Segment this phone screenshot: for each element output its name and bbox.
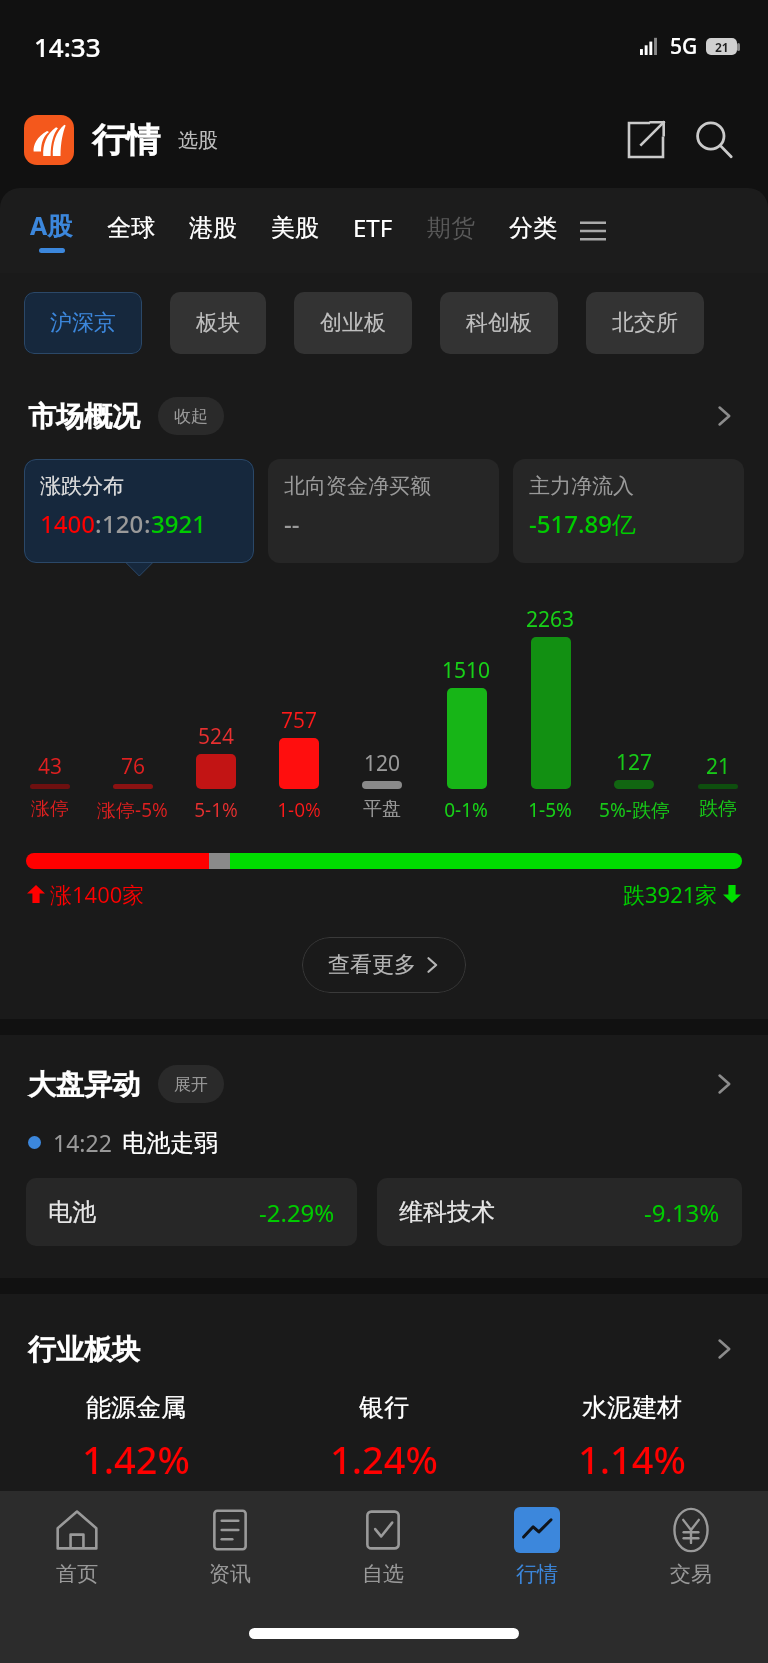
button[interactable]: ETF <box>353 211 393 250</box>
staticText: 美股 <box>271 213 319 243</box>
staticText: 76 <box>121 752 146 781</box>
button[interactable]: 北交所 <box>586 292 704 354</box>
button[interactable]: 水泥建材 <box>508 1392 756 1485</box>
staticText: 1510 <box>442 656 491 685</box>
staticText: 120 <box>102 507 144 540</box>
staticText: 分类 <box>509 213 557 243</box>
staticText: 涨停 <box>31 797 69 821</box>
staticText: 43 <box>38 752 63 781</box>
staticText: 全球 <box>107 213 155 243</box>
button[interactable]: 沪深京 <box>24 292 142 354</box>
staticText: 展开 <box>174 1074 208 1095</box>
button[interactable]: 展开 <box>158 1065 224 1103</box>
button[interactable]: 收起 <box>158 397 224 435</box>
staticText: 127 <box>616 748 653 777</box>
button[interactable]: 大盘异动 <box>0 1041 768 1127</box>
button[interactable]: 市场概况 <box>0 373 768 459</box>
staticText: -- <box>284 507 300 540</box>
staticText: 电池走弱 <box>122 1128 218 1158</box>
staticText: 行情 <box>516 1561 558 1587</box>
staticText: 市场概况 <box>28 399 140 434</box>
button[interactable]: More tabs <box>571 209 615 253</box>
staticText: 北向资金净买额 <box>284 473 431 499</box>
staticText: 北交所 <box>612 309 678 337</box>
button[interactable]: 美股 <box>271 213 319 249</box>
staticText: 14:22 <box>53 1127 112 1158</box>
staticText: 0-1% <box>444 797 488 823</box>
staticText: 120 <box>364 749 401 778</box>
button[interactable]: 维科技术 <box>377 1178 742 1246</box>
staticText: 1.42% <box>82 1433 190 1485</box>
button[interactable]: 科创板 <box>440 292 558 354</box>
staticText: 21 <box>706 752 731 781</box>
staticText: 大盘异动 <box>28 1067 140 1102</box>
staticText: 交易 <box>670 1561 712 1587</box>
staticText: 平盘 <box>363 797 401 821</box>
button[interactable]: 创业板 <box>294 292 412 354</box>
staticText: 5%-跌停 <box>599 797 670 823</box>
staticText: 主力净流入 <box>529 473 634 499</box>
button[interactable]: 港股 <box>189 213 237 249</box>
button[interactable]: 期货 <box>427 213 475 249</box>
staticText: 行情 <box>92 119 160 162</box>
staticText: ETF <box>353 211 393 244</box>
staticText: 1400 <box>40 507 95 540</box>
staticText: 资讯 <box>209 1561 251 1587</box>
staticText: -9.13% <box>644 1196 720 1229</box>
button[interactable]: 银行 <box>260 1392 508 1485</box>
button[interactable]: 北向资金净买额 <box>268 459 499 563</box>
staticText: : <box>95 507 102 540</box>
staticText: -2.29% <box>259 1196 335 1229</box>
staticText: 524 <box>198 722 235 751</box>
staticText: 1.24% <box>330 1433 438 1485</box>
button[interactable]: 主力净流入 <box>513 459 744 563</box>
button[interactable]: A股 <box>30 208 73 253</box>
button[interactable]: 电池 <box>26 1178 357 1246</box>
staticText: 银行 <box>359 1392 409 1423</box>
staticText: 2263 <box>526 605 575 634</box>
staticText: 3921 <box>151 507 206 540</box>
staticText: 港股 <box>189 213 237 243</box>
staticText: 涨1400家 <box>50 879 145 909</box>
button[interactable]: Search <box>684 110 744 170</box>
button[interactable]: 行业板块 <box>0 1306 768 1392</box>
staticText: 涨停-5% <box>97 797 168 823</box>
button[interactable]: 查看更多 <box>302 937 466 993</box>
button[interactable]: 资讯 <box>153 1491 306 1603</box>
staticText: 收起 <box>174 406 208 427</box>
staticText: 14:33 <box>34 29 101 64</box>
staticText: 行业板块 <box>28 1332 140 1367</box>
staticText: 1-5% <box>528 797 572 823</box>
staticText: 首页 <box>56 1561 98 1587</box>
staticText: 1.14% <box>578 1433 686 1485</box>
staticText: 涨跌分布 <box>40 473 124 499</box>
button[interactable]: 交易 <box>614 1491 768 1603</box>
staticText: 水泥建材 <box>582 1392 682 1423</box>
button[interactable]: Share <box>618 112 674 168</box>
staticText: 5-1% <box>194 797 238 823</box>
staticText: 能源金属 <box>86 1392 186 1423</box>
button[interactable]: 板块 <box>170 292 266 354</box>
button[interactable]: 首页 <box>0 1491 153 1603</box>
staticText: 维科技术 <box>399 1197 495 1227</box>
staticText: 跌停 <box>699 797 737 821</box>
staticText: 自选 <box>362 1561 404 1587</box>
staticText: 757 <box>281 706 318 735</box>
staticText: -517.89亿 <box>529 507 636 540</box>
staticText: 21 <box>715 39 729 55</box>
button[interactable]: 分类 <box>509 213 557 249</box>
staticText: 5G <box>670 32 698 61</box>
staticText: 期货 <box>427 213 475 243</box>
button[interactable]: 行情 <box>460 1491 614 1603</box>
staticText: 选股 <box>178 128 218 153</box>
staticText: 板块 <box>196 309 240 337</box>
button[interactable]: 自选 <box>306 1491 460 1603</box>
staticText: 创业板 <box>320 309 386 337</box>
button[interactable]: 能源金属 <box>12 1392 260 1485</box>
staticText: 查看更多 <box>328 951 416 979</box>
staticText: A股 <box>30 208 73 242</box>
staticText: 跌3921家 <box>623 879 718 909</box>
staticText: 电池 <box>48 1197 96 1227</box>
button[interactable]: 全球 <box>107 213 155 249</box>
button[interactable]: 涨跌分布 <box>24 459 254 563</box>
